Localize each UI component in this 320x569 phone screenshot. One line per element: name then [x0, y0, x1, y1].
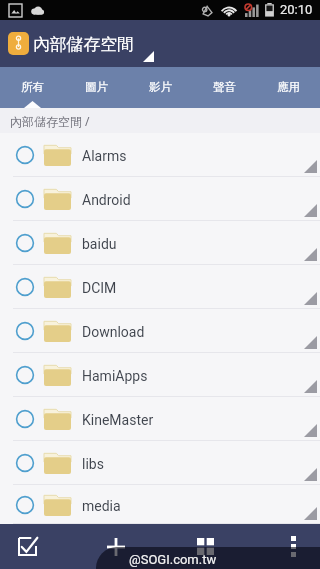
staticText: HamiApps	[82, 368, 148, 384]
staticText: Alarms	[82, 148, 127, 164]
button[interactable]: 內部儲存空間	[0, 20, 320, 67]
button[interactable]: Add	[95, 526, 136, 567]
button[interactable]: 影片	[128, 67, 192, 108]
staticText: 應用	[277, 80, 300, 94]
staticText: Download	[82, 324, 145, 340]
button[interactable]: HamiApps	[0, 353, 320, 397]
staticText: DCIM	[82, 280, 117, 296]
button[interactable]: Grid view	[185, 526, 226, 567]
button[interactable]: Download	[0, 309, 320, 353]
staticText: Android	[82, 192, 131, 208]
button[interactable]: baidu	[0, 221, 320, 265]
button[interactable]: DCIM	[0, 265, 320, 309]
staticText: 內部儲存空間	[33, 34, 134, 55]
staticText: 內部儲存空間 /	[10, 113, 90, 129]
staticText: 圖片	[85, 80, 108, 94]
button[interactable]: 所有	[0, 67, 64, 108]
button[interactable]: 應用	[256, 67, 320, 108]
button[interactable]: Select items	[7, 526, 48, 567]
staticText: 20:10	[280, 2, 313, 17]
staticText: 所有	[21, 80, 44, 94]
staticText: @SOGI.com.tw	[129, 552, 217, 567]
staticText: media	[82, 498, 121, 514]
button[interactable]: Android	[0, 177, 320, 221]
staticText: libs	[82, 456, 104, 472]
button[interactable]: KineMaster	[0, 397, 320, 441]
staticText: 影片	[149, 80, 172, 94]
staticText: KineMaster	[82, 412, 154, 428]
button[interactable]: media	[0, 485, 320, 524]
button[interactable]: libs	[0, 441, 320, 485]
button[interactable]: 聲音	[192, 67, 256, 108]
staticText: baidu	[82, 236, 117, 252]
button[interactable]: 圖片	[64, 67, 128, 108]
button[interactable]: Alarms	[0, 133, 320, 177]
staticText: 聲音	[213, 80, 236, 94]
button[interactable]: More options	[273, 526, 314, 567]
